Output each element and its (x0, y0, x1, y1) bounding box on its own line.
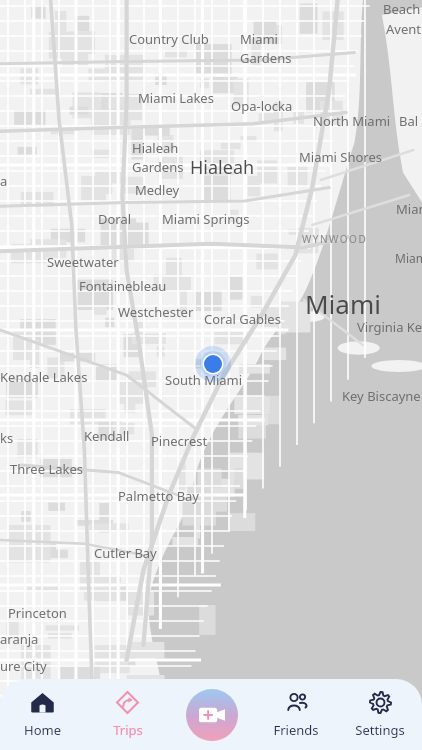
staticText: Miami Lakes (138, 89, 214, 107)
staticText: Virginia Key (357, 318, 422, 336)
staticText: Home (24, 721, 61, 739)
staticText: Princeton (8, 604, 67, 622)
staticText: Westchester (118, 303, 194, 321)
staticText: Cutler Bay (94, 544, 157, 562)
staticText: Doral (98, 210, 132, 228)
staticText: Fontainebleau (79, 277, 167, 295)
staticText: Avent (386, 20, 421, 38)
staticText: North Miami (313, 112, 391, 130)
staticText: Medley (135, 181, 180, 199)
button[interactable]: Home (0, 679, 85, 750)
staticText: Settings (355, 721, 405, 739)
staticText: Palmetto Bay (118, 487, 200, 505)
staticText: Kendall (84, 427, 130, 445)
staticText: Key Biscayne (342, 387, 421, 405)
staticText: Country Club (129, 30, 209, 48)
staticText: Sweetwater (47, 253, 119, 271)
staticText: Miami (395, 250, 422, 266)
staticText: Opa-locka (231, 97, 293, 115)
button[interactable]: Friends (254, 679, 338, 750)
staticText: Miami Gardens (240, 30, 292, 67)
staticText: WYNWOOD (302, 232, 368, 246)
button[interactable]: Record a new trip video (186, 689, 238, 741)
button[interactable]: Settings (338, 679, 422, 750)
staticText: Miami (396, 200, 422, 218)
staticText: Three Lakes (10, 460, 84, 478)
staticText: Kendale Lakes (0, 368, 88, 386)
staticText: Coral Gables (204, 310, 281, 328)
staticText: Hialeah Gardens (132, 139, 184, 176)
staticText: Miami (305, 286, 381, 321)
staticText: Pinecrest (151, 432, 208, 450)
staticText: ure City (0, 657, 47, 675)
staticText: Miami Springs (162, 210, 250, 228)
staticText: Bal (399, 112, 419, 130)
staticText: Trips (113, 721, 143, 739)
staticText: a (0, 172, 8, 190)
staticText: Hialeah (190, 155, 255, 180)
staticText: aranja (0, 630, 39, 648)
staticText: South Miami (165, 371, 243, 389)
staticText: Miami Shores (299, 148, 383, 166)
button[interactable]: Trips (85, 679, 170, 750)
staticText: Friends (273, 721, 319, 739)
staticText: ks (0, 429, 14, 447)
staticText: Beach (383, 0, 421, 18)
